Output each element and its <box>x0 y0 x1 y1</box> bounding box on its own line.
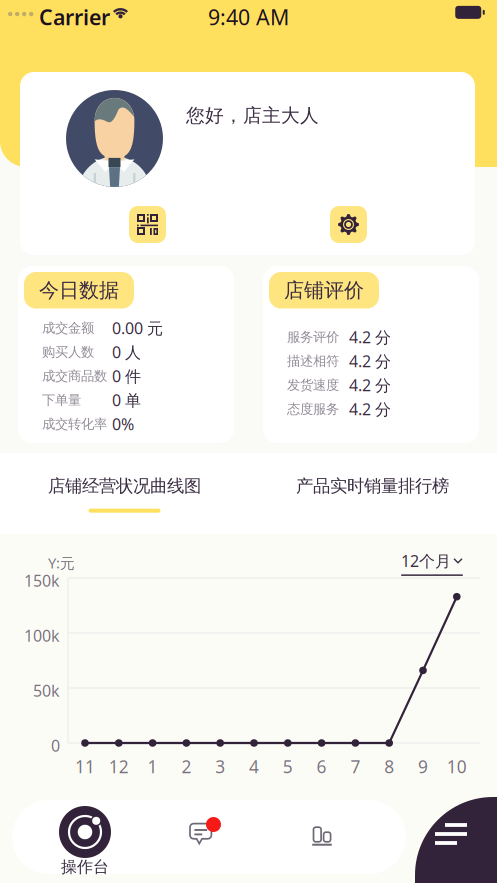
staticText: 成交商品数 <box>42 368 107 384</box>
staticText: 100k <box>24 625 60 646</box>
staticText: 0 人 <box>112 341 141 363</box>
staticText: 今日数据 <box>39 278 119 303</box>
staticText: 7 <box>350 755 360 778</box>
staticText: 操作台 <box>61 857 109 877</box>
staticText: 店铺评价 <box>284 278 364 303</box>
staticText: 50k <box>33 680 60 701</box>
staticText: 4.2 分 <box>349 374 391 396</box>
staticText: 态度服务 <box>287 401 339 417</box>
staticText: 下单量 <box>42 392 81 408</box>
staticText: Carrier <box>39 3 110 31</box>
staticText: 4.2 分 <box>349 326 391 348</box>
staticText: Y:元 <box>48 553 75 573</box>
staticText: 10 <box>447 755 467 778</box>
staticText: 店铺经营状况曲线图 <box>48 475 201 497</box>
button[interactable]: Statistics <box>265 800 385 874</box>
staticText: 2 <box>181 755 191 778</box>
staticText: 12个月 <box>401 550 451 571</box>
staticText: 购买人数 <box>42 344 94 360</box>
staticText: 0 单 <box>112 389 141 411</box>
button[interactable]: 操作台 <box>25 800 145 874</box>
staticText: 4.2 分 <box>349 398 391 420</box>
staticText: 6 <box>317 755 327 778</box>
staticText: 11 <box>75 755 95 778</box>
staticText: 发货速度 <box>287 377 339 393</box>
staticText: 成交转化率 <box>42 416 107 432</box>
staticText: 3 <box>215 755 225 778</box>
button[interactable]: Menu <box>415 797 497 883</box>
button[interactable]: 产品实时销量排行榜 <box>248 472 496 516</box>
button[interactable]: Settings <box>330 206 367 243</box>
staticText: 成交金额 <box>42 320 94 336</box>
staticText: 5 <box>283 755 293 778</box>
button[interactable]: Messages <box>145 800 265 874</box>
staticText: 4 <box>249 755 259 778</box>
staticText: 产品实时销量排行榜 <box>296 475 449 497</box>
staticText: 4.2 分 <box>349 350 391 372</box>
staticText: 9 <box>418 755 428 778</box>
staticText: 0 件 <box>112 365 141 387</box>
staticText: 9:40 AM <box>208 3 289 31</box>
staticText: 您好，店主大人 <box>186 104 319 127</box>
staticText: 1 <box>148 755 158 778</box>
staticText: 150k <box>24 570 60 591</box>
button[interactable]: 店铺经营状况曲线图 <box>0 472 248 516</box>
button[interactable]: 12个月 <box>396 550 468 576</box>
staticText: 描述相符 <box>287 353 339 369</box>
staticText: 0 <box>51 735 60 756</box>
staticText: 12 <box>109 755 129 778</box>
staticText: 0.00 元 <box>112 317 163 339</box>
staticText: 服务评价 <box>287 329 339 345</box>
staticText: 8 <box>384 755 394 778</box>
staticText: 0% <box>112 413 134 435</box>
button[interactable]: Scan QR code <box>129 206 166 243</box>
